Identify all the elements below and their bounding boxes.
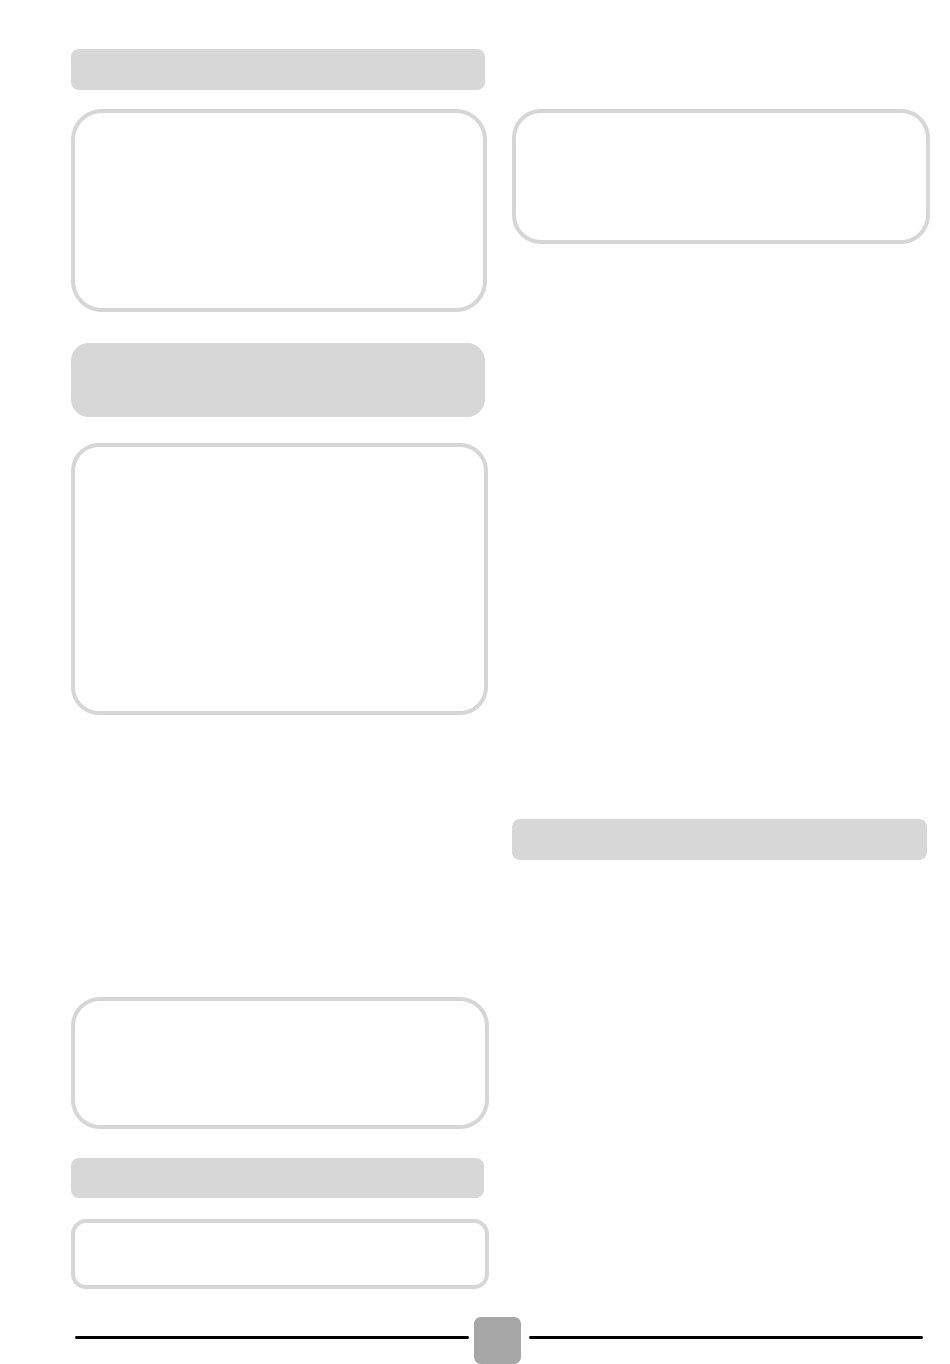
- button[interactable]: Resize handle: [474, 1317, 521, 1364]
- button[interactable]: Content card placeholder: [71, 997, 489, 1129]
- button[interactable]: Content card placeholder: [71, 109, 487, 312]
- button[interactable]: Content card placeholder: [71, 443, 488, 715]
- button[interactable]: Section heading placeholder: [71, 343, 485, 417]
- button[interactable]: Content card placeholder: [512, 109, 930, 244]
- button[interactable]: Content card placeholder: [71, 1219, 489, 1289]
